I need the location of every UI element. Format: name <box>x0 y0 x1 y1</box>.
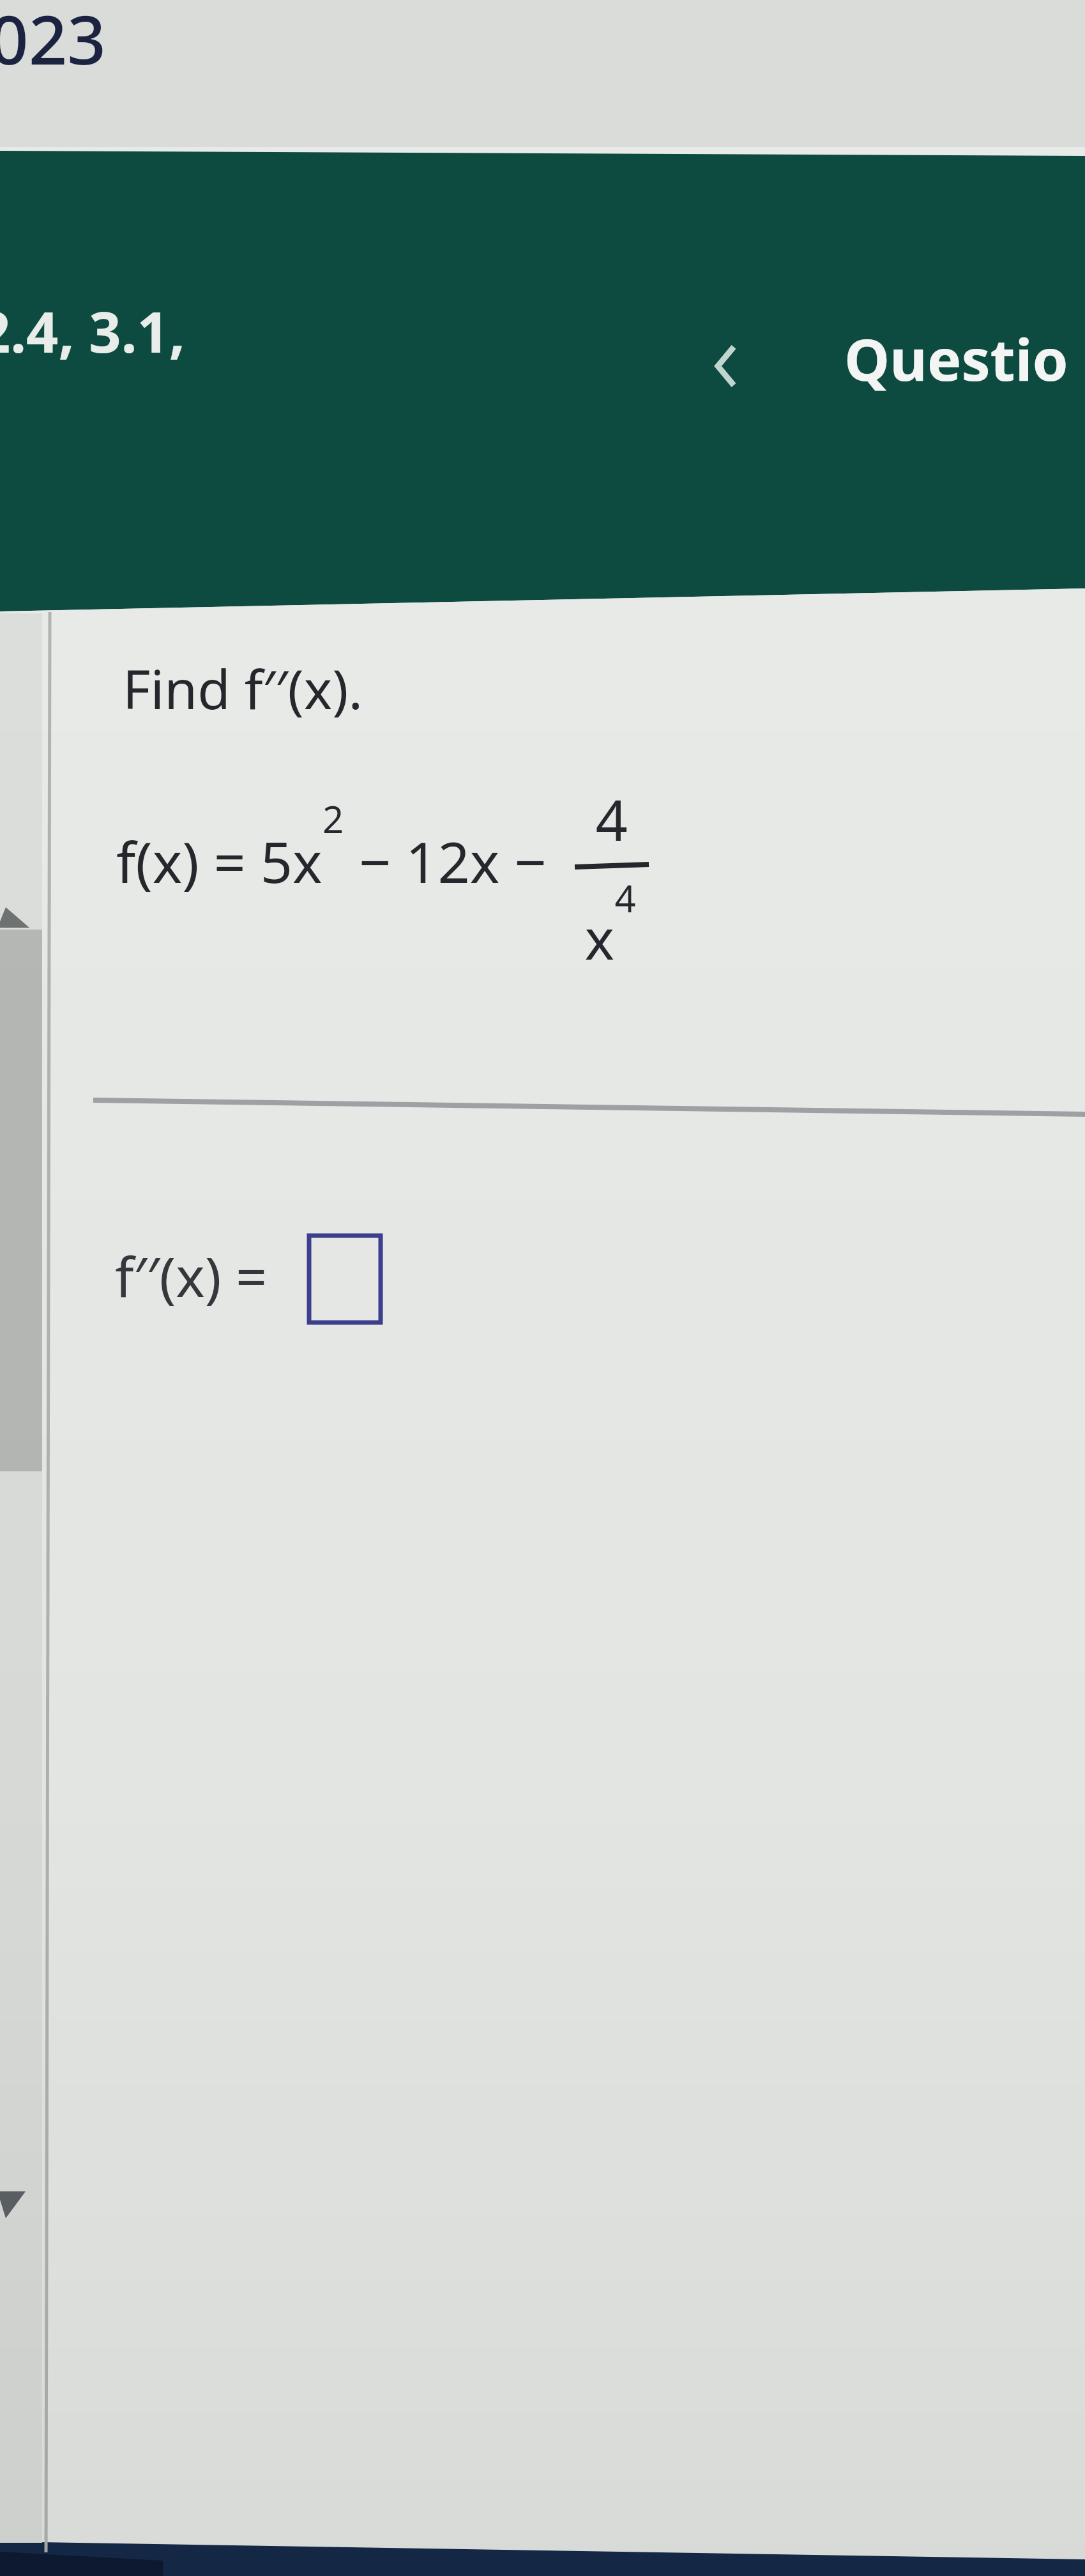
button[interactable]: Back <box>677 319 766 418</box>
button[interactable] <box>830 310 1085 425</box>
button[interactable]: Scroll up <box>0 894 45 949</box>
button[interactable]: Answer entry field <box>300 1230 390 1329</box>
button[interactable]: Scroll down <box>0 2172 45 2233</box>
